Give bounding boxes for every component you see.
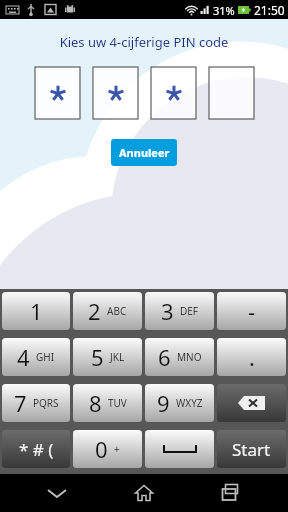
staticText: WXYZ [176, 396, 203, 410]
staticText: 6 [158, 342, 171, 372]
button[interactable]: 1 [2, 292, 70, 330]
staticText: + [114, 442, 120, 456]
button[interactable] [151, 67, 196, 119]
button[interactable] [217, 384, 286, 422]
staticText: 0 [95, 434, 108, 464]
button[interactable]: 7 [2, 384, 70, 422]
button[interactable]: Recent apps [201, 474, 261, 512]
button[interactable]: 0 [73, 430, 142, 468]
button[interactable]: * # ( [2, 430, 70, 468]
button[interactable] [209, 67, 254, 119]
button[interactable]: Back [27, 474, 87, 512]
button[interactable]: Annuleer [111, 139, 177, 166]
staticText: MNO [177, 350, 202, 364]
staticText: 5 [91, 342, 104, 372]
staticText: PQRS [33, 396, 59, 410]
staticText: Annuleer [119, 145, 170, 160]
button[interactable]: - [217, 292, 286, 330]
staticText: ABC [107, 304, 127, 318]
button[interactable]: 2 [73, 292, 142, 330]
staticText: - [248, 296, 256, 326]
button[interactable]: . [217, 338, 286, 376]
staticText: JKL [110, 350, 125, 364]
staticText: 3 [161, 296, 174, 326]
button[interactable]: 4 [2, 338, 70, 376]
staticText: . [249, 342, 255, 372]
button[interactable]: 5 [73, 338, 142, 376]
staticText: 21:50 [254, 2, 285, 18]
staticText: 8 [89, 388, 102, 418]
staticText: 2 [88, 296, 101, 326]
staticText: GHI [36, 350, 55, 364]
staticText: 1 [30, 296, 43, 326]
button[interactable] [145, 430, 214, 468]
button[interactable]: 3 [145, 292, 214, 330]
staticText: Start [232, 438, 271, 461]
staticText: 31% [213, 3, 235, 18]
button[interactable]: 9 [145, 384, 214, 422]
staticText: DEF [180, 304, 199, 318]
staticText: TUV [108, 396, 127, 410]
button[interactable]: 6 [145, 338, 214, 376]
button[interactable]: Start [217, 430, 286, 468]
button[interactable] [93, 67, 138, 119]
button[interactable]: Home [114, 474, 174, 512]
staticText: 7 [14, 388, 27, 418]
button[interactable] [35, 67, 80, 119]
staticText: 4 [17, 342, 30, 372]
staticText: 9 [157, 388, 170, 418]
staticText: Kies uw 4-cijferige PIN code [0, 33, 288, 51]
button[interactable]: 8 [73, 384, 142, 422]
staticText: * # ( [19, 438, 54, 461]
